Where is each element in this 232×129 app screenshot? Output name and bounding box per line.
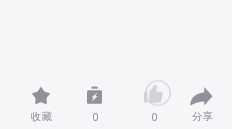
button[interactable]: 点赞 0 bbox=[128, 76, 180, 124]
button[interactable]: 分享 bbox=[176, 76, 228, 124]
button[interactable]: 收藏 bbox=[15, 76, 67, 124]
staticText: 0 bbox=[92, 110, 99, 124]
button[interactable]: 充电 0 bbox=[69, 76, 121, 124]
staticText: 收藏 bbox=[31, 110, 52, 123]
staticText: 0 bbox=[151, 110, 158, 124]
staticText: 分享 bbox=[192, 110, 213, 123]
